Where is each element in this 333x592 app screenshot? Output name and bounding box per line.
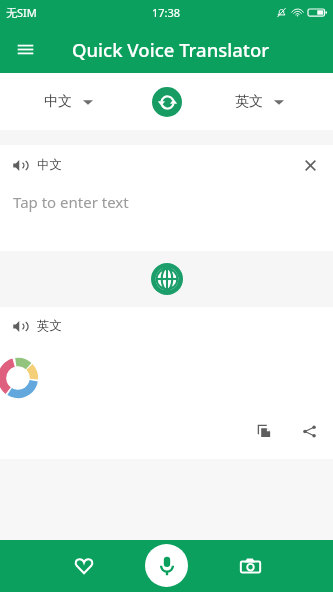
- button[interactable]: Camera: [232, 548, 268, 584]
- button[interactable]: Tap to enter text: [0, 185, 333, 251]
- button[interactable]: Copy: [252, 419, 276, 443]
- staticText: Tap to enter text: [13, 192, 129, 212]
- staticText: 无SIM: [6, 5, 37, 20]
- staticText: 英文: [37, 318, 62, 334]
- button[interactable]: Swap languages: [152, 87, 182, 117]
- button[interactable]: Clear: [298, 153, 322, 177]
- staticText: Quick Voice Translator: [72, 37, 270, 62]
- button[interactable]: Share: [297, 419, 321, 443]
- staticText: 英文: [235, 93, 263, 111]
- button[interactable]: Menu: [6, 30, 44, 68]
- button[interactable]: Speak source: [13, 156, 31, 174]
- button[interactable]: 中文: [44, 93, 94, 111]
- staticText: 中文: [37, 157, 62, 173]
- button[interactable]: Translate: [150, 262, 184, 296]
- staticText: 中文: [44, 93, 72, 111]
- button[interactable]: 英文: [235, 93, 285, 111]
- button[interactable]: Speak result: [13, 317, 31, 335]
- staticText: 17:38: [152, 5, 181, 20]
- button[interactable]: Favorites: [66, 548, 102, 584]
- button[interactable]: Record voice: [145, 544, 188, 587]
